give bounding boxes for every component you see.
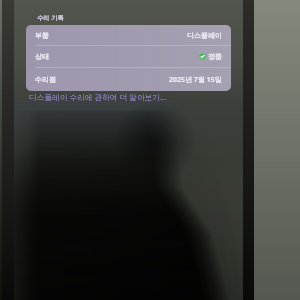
staticText: 정품 xyxy=(208,52,222,61)
staticText: 부품 xyxy=(35,31,49,40)
staticText: 상태 xyxy=(35,52,49,61)
button[interactable]: 부품 xyxy=(26,25,231,45)
staticText: 디스플레이 xyxy=(187,31,222,40)
other: Verified xyxy=(199,53,206,60)
button[interactable]: 디스플레이 수리에 관하여 더 알아보기... xyxy=(29,92,167,103)
staticText: 수리됨 xyxy=(35,75,56,84)
button[interactable]: 상태 xyxy=(26,46,231,67)
button[interactable]: 수리됨 xyxy=(26,68,231,91)
staticText: 2025년 7월 15일 xyxy=(169,75,222,85)
staticText: 수리 기록 xyxy=(37,13,64,21)
